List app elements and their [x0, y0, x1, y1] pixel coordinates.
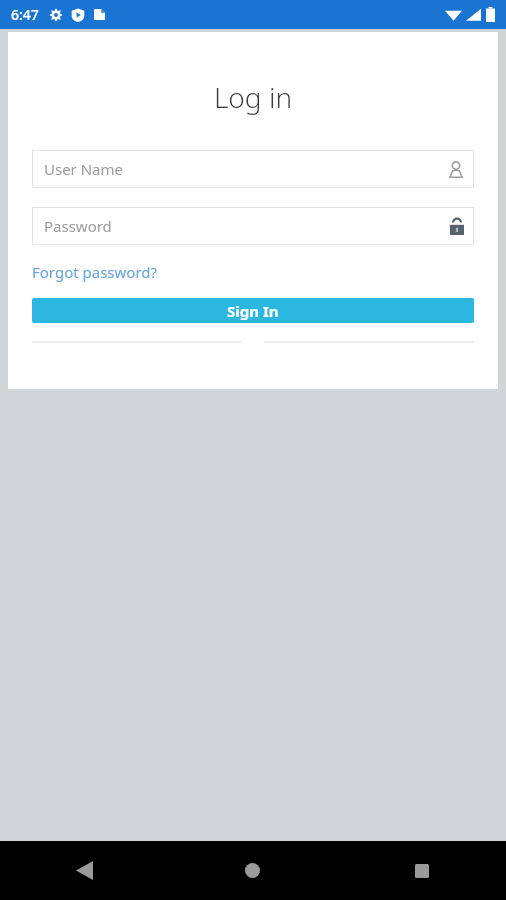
staticText: Sign In [227, 301, 279, 321]
button[interactable]: Home [168, 841, 337, 900]
button[interactable]: User Name [32, 150, 474, 188]
staticText: Forgot password? [32, 262, 158, 282]
button[interactable]: Password [32, 207, 474, 245]
button[interactable]: Recent apps [337, 841, 506, 900]
staticText: User Name [44, 159, 448, 179]
staticText: Log in [8, 78, 498, 116]
other: Password [450, 218, 464, 235]
other: User name [448, 161, 464, 178]
button[interactable]: Back [0, 841, 168, 900]
staticText: 6:47 [11, 5, 39, 24]
button[interactable]: Forgot password? [32, 260, 158, 284]
button[interactable]: Sign In [32, 298, 474, 323]
staticText: Password [44, 216, 450, 236]
